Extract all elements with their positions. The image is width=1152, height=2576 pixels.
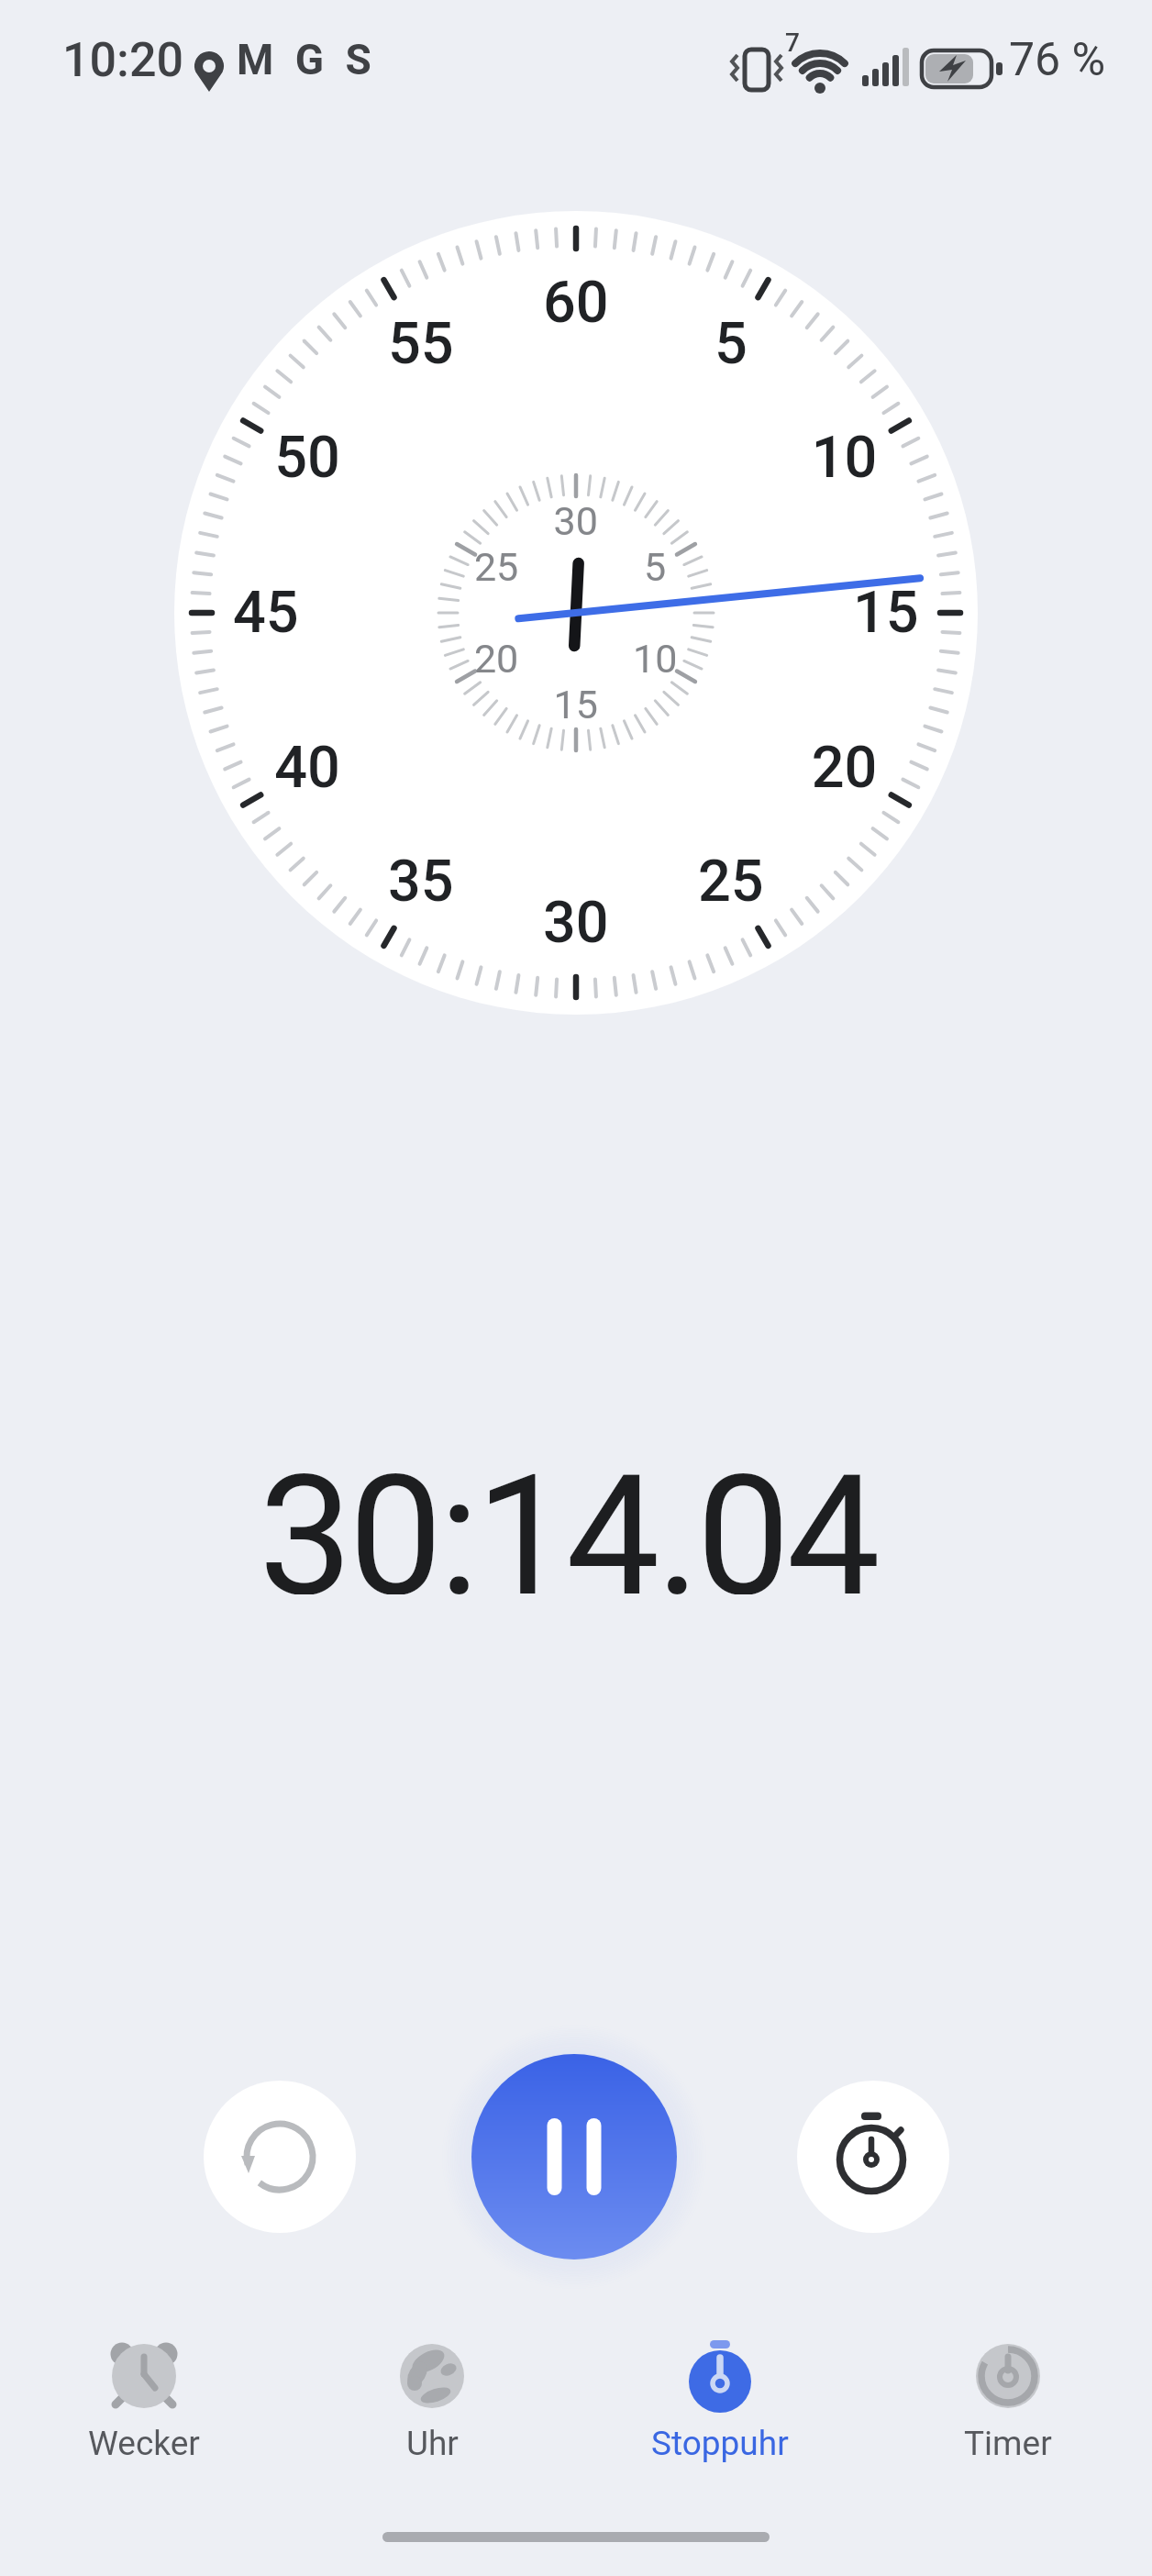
button[interactable] xyxy=(204,2081,356,2233)
button[interactable]: Wecker xyxy=(0,2332,288,2463)
staticText: Wecker xyxy=(88,2424,200,2463)
staticText: 7 xyxy=(785,28,800,58)
button[interactable]: Timer xyxy=(864,2332,1152,2463)
staticText: Timer xyxy=(964,2424,1052,2463)
staticText: M G S xyxy=(237,35,377,84)
button[interactable] xyxy=(797,2081,949,2233)
staticText: Stoppuhr xyxy=(651,2424,789,2463)
button[interactable]: Stoppuhr xyxy=(576,2332,864,2463)
button[interactable]: Uhr xyxy=(288,2332,576,2463)
button[interactable] xyxy=(471,2054,677,2260)
staticText: Uhr xyxy=(406,2424,459,2463)
staticText: 76 % xyxy=(1009,33,1106,87)
staticText: 10:20 xyxy=(62,32,184,88)
staticText: 30:14.04 xyxy=(259,1438,877,1594)
